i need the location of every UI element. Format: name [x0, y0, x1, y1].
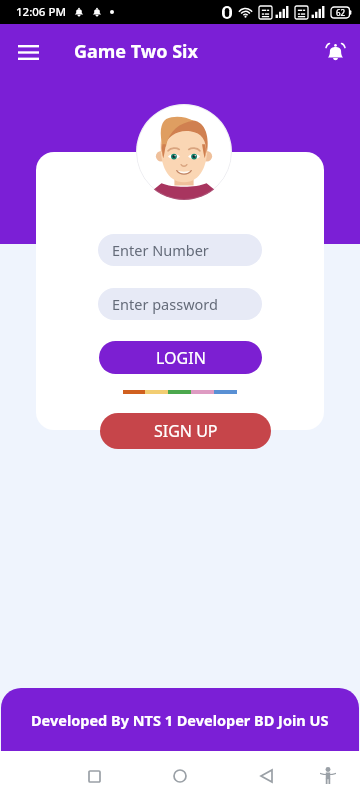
button[interactable]: Recent apps [77, 759, 111, 793]
button[interactable]: Open navigation menu [8, 32, 48, 72]
staticText: 12:06 PM [16, 4, 67, 20]
staticText: Game Two Six [74, 39, 198, 64]
staticText: Enter password [112, 294, 218, 314]
button[interactable]: Developed By NTS 1 Developer BD Join US [1, 688, 359, 751]
button[interactable]: Enter password [98, 288, 262, 320]
button[interactable]: Enter Number [98, 234, 262, 266]
staticText: SIGN UP [154, 420, 218, 442]
staticText: Enter Number [112, 240, 209, 260]
button[interactable]: Accessibility menu [311, 759, 345, 793]
button[interactable]: Home [163, 759, 197, 793]
staticText: Developed By NTS 1 Developer BD Join US [31, 710, 329, 730]
button[interactable]: SIGN UP [100, 413, 271, 449]
button[interactable]: Notifications [315, 31, 355, 71]
button[interactable]: Back [249, 759, 283, 793]
staticText: LOGIN [156, 347, 206, 369]
staticText: 62 [336, 7, 346, 18]
button[interactable]: LOGIN [99, 341, 262, 374]
